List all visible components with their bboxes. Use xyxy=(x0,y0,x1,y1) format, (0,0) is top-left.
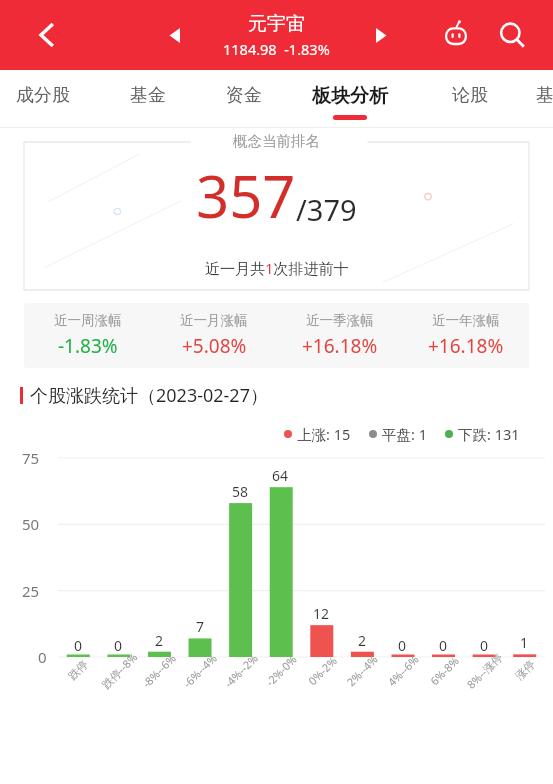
staticText: 跌停 xyxy=(65,657,91,683)
staticText: -4%--2% xyxy=(221,650,261,691)
staticText: 下跌: 131 xyxy=(458,424,520,444)
staticText: 64 xyxy=(272,466,289,485)
staticText: 7 xyxy=(196,617,205,636)
staticText: 板块分析 xyxy=(312,84,388,108)
staticText: 2%--4% xyxy=(343,652,381,689)
staticText: -2%-0% xyxy=(262,652,300,689)
button[interactable]: 近一周涨幅 xyxy=(24,303,529,368)
staticText: 4%--6% xyxy=(384,652,422,689)
staticText: 0 xyxy=(439,636,448,655)
staticText: 1184.98 -1.83% xyxy=(223,39,330,59)
button[interactable]: Search xyxy=(491,14,533,56)
button[interactable]: 资金 xyxy=(226,70,262,128)
staticText: -6%--4% xyxy=(180,650,220,691)
staticText: 近一月涨幅 xyxy=(180,312,248,329)
staticText: 论股 xyxy=(452,84,488,107)
staticText: /379 xyxy=(296,190,357,229)
staticText: +5.08% xyxy=(182,333,247,359)
staticText: 0 xyxy=(114,636,123,655)
staticText: 2 xyxy=(358,631,367,650)
button[interactable]: Previous sector xyxy=(158,18,192,52)
staticText: 0 xyxy=(398,636,407,655)
staticText: 0 xyxy=(74,636,83,655)
button[interactable]: 基金 xyxy=(130,70,166,128)
staticText: 0%-2% xyxy=(305,653,340,688)
button[interactable]: 个股涨跌统计（2023-02-27） xyxy=(20,383,553,408)
staticText: 0 xyxy=(480,636,489,655)
button[interactable]: 基 xyxy=(536,70,553,128)
button[interactable]: 论股 xyxy=(452,70,488,128)
staticText: 58 xyxy=(232,482,249,501)
staticText: -1.83% xyxy=(58,333,118,359)
staticText: 75 xyxy=(22,448,40,468)
staticText: 资金 xyxy=(226,84,262,107)
button[interactable]: 概念当前排名 xyxy=(24,142,529,290)
staticText: 0 xyxy=(38,647,47,667)
staticText: 12 xyxy=(313,604,330,623)
button[interactable]: Assistant robot xyxy=(435,14,477,56)
staticText: 25 xyxy=(22,581,40,601)
staticText: 概念当前排名 xyxy=(233,132,320,150)
staticText: 成分股 xyxy=(16,84,70,107)
staticText: 平盘: 1 xyxy=(382,424,427,444)
staticText: 元宇宙 xyxy=(248,12,305,36)
staticText: 6%-8% xyxy=(427,653,462,688)
button[interactable]: Back xyxy=(28,15,68,55)
button[interactable]: 成分股 xyxy=(16,70,70,128)
staticText: 1 xyxy=(520,633,529,652)
staticText: 50 xyxy=(22,514,40,534)
staticText: 跌停--8% xyxy=(98,649,141,692)
staticText: +16.18% xyxy=(428,333,504,359)
staticText: 上涨: 15 xyxy=(297,424,351,444)
staticText: 近一年涨幅 xyxy=(432,312,500,329)
staticText: 涨停 xyxy=(512,657,538,683)
button[interactable]: Next sector xyxy=(363,18,397,52)
staticText: 8%--涨停 xyxy=(463,649,506,692)
staticText: 基 xyxy=(536,84,553,107)
staticText: +16.18% xyxy=(302,333,378,359)
staticText: -8%--6% xyxy=(139,650,179,691)
staticText: 357 xyxy=(196,156,296,235)
staticText: 近一季涨幅 xyxy=(306,312,374,329)
button[interactable]: 板块分析 xyxy=(312,70,388,128)
staticText: 个股涨跌统计（2023-02-27） xyxy=(30,383,268,408)
staticText: 基金 xyxy=(130,84,166,107)
staticText: 近一月共1次排进前十 xyxy=(205,258,349,278)
staticText: 2 xyxy=(155,631,164,650)
staticText: 近一周涨幅 xyxy=(54,312,122,329)
